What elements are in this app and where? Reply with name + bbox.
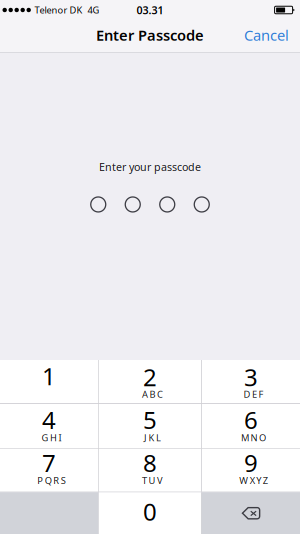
staticText: 4G (87, 4, 99, 16)
staticText: 7 (42, 447, 56, 479)
staticText: 9 (244, 447, 258, 479)
button[interactable]: 1 (0, 360, 98, 403)
staticText: Enter your passcode (99, 160, 201, 174)
button[interactable]: Delete (202, 492, 300, 534)
staticText: 0 (143, 495, 157, 527)
staticText: Cancel (244, 25, 289, 45)
staticText: 4 (42, 404, 56, 436)
button[interactable]: 3 (202, 360, 300, 403)
staticText: 8 (143, 447, 157, 479)
button[interactable]: 6 (202, 404, 300, 448)
staticText: ABC (142, 388, 163, 400)
button[interactable]: 4 (0, 404, 98, 448)
button[interactable]: 7 (0, 449, 98, 492)
button[interactable]: 0 (99, 492, 201, 534)
staticText: 3 (244, 361, 258, 393)
staticText: 6 (244, 404, 258, 436)
staticText: 03.31 (136, 3, 163, 17)
staticText: 2 (143, 361, 157, 393)
staticText: GHI (41, 431, 61, 444)
staticText: JKL (144, 431, 161, 444)
staticText: MNO (241, 431, 266, 444)
staticText: Enter Passcode (96, 25, 204, 45)
staticText: PQRS (37, 474, 66, 487)
staticText: WXYZ (239, 474, 268, 487)
staticText: TUV (142, 474, 163, 487)
button[interactable]: Cancel (237, 18, 300, 52)
button[interactable]: 8 (99, 449, 201, 492)
button[interactable]: 5 (99, 404, 201, 448)
button[interactable]: 9 (202, 449, 300, 492)
staticText: 5 (143, 404, 157, 436)
staticText: 1 (42, 360, 56, 392)
button[interactable]: 2 (99, 360, 201, 403)
staticText: Telenor DK (34, 4, 82, 16)
staticText: DEF (244, 388, 264, 400)
